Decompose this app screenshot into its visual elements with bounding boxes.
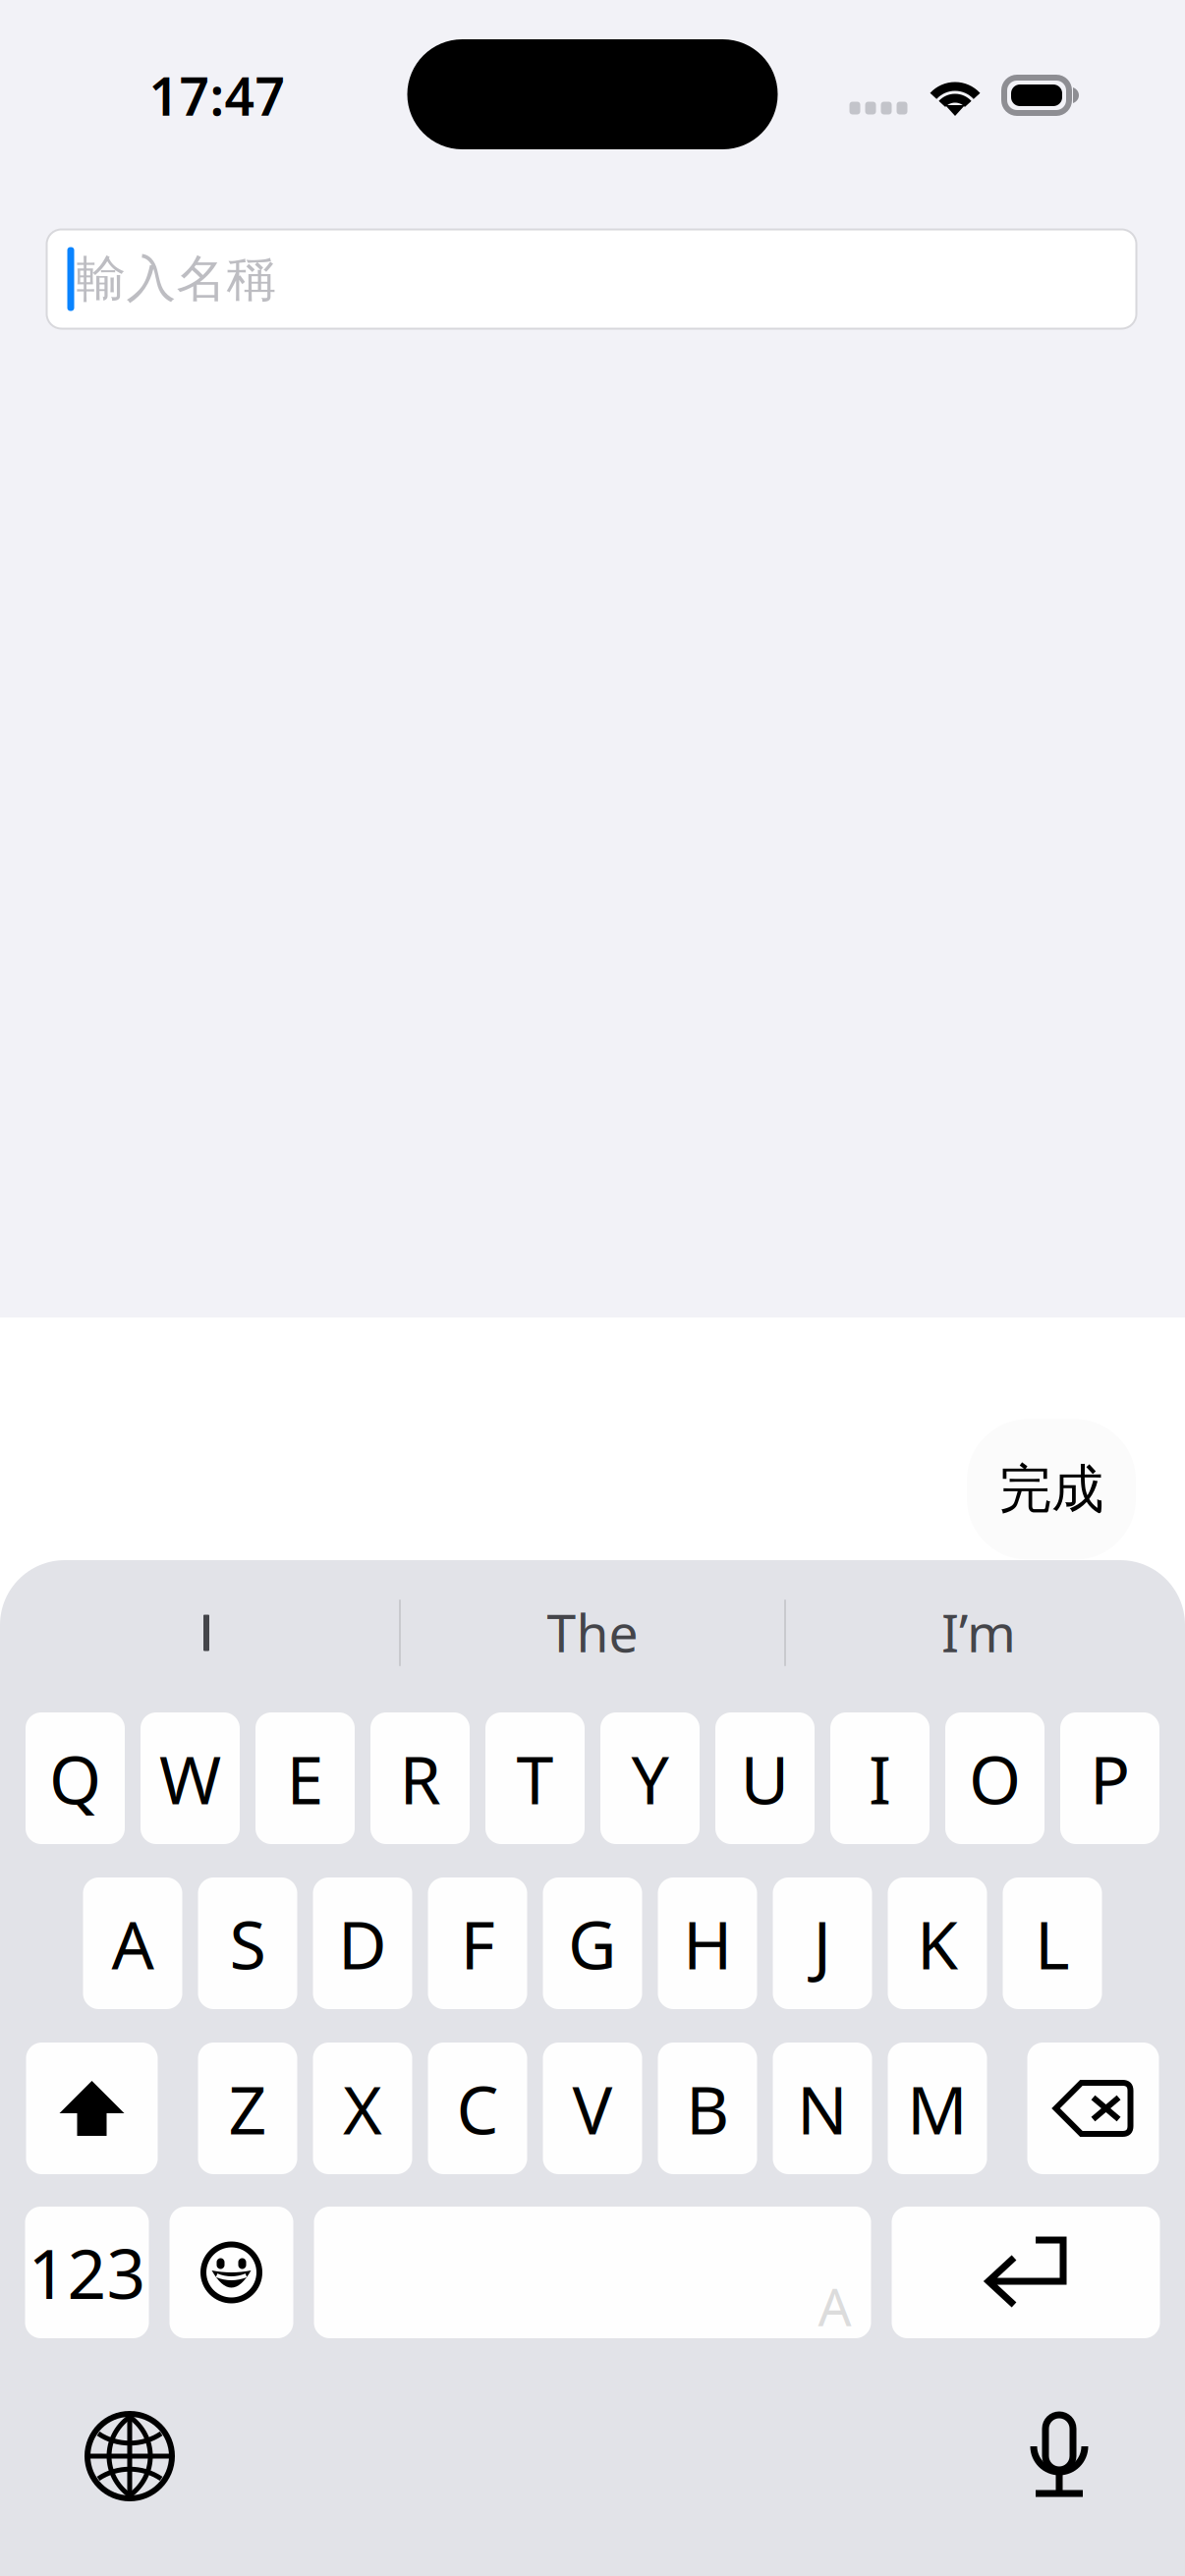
staticText: X — [343, 2064, 382, 2153]
button[interactable]: C — [428, 2043, 527, 2174]
staticText: P — [1090, 1734, 1130, 1823]
button[interactable]: X — [313, 2043, 412, 2174]
staticText: G — [568, 1899, 617, 1988]
staticText: 完成 — [999, 1457, 1103, 1522]
staticText: 輸入名稱 — [76, 248, 277, 310]
staticText: Y — [631, 1734, 669, 1823]
button[interactable]: S — [198, 1877, 297, 2009]
button[interactable]: U — [715, 1712, 815, 1844]
staticText: F — [460, 1899, 495, 1988]
button[interactable]: 完成 — [967, 1419, 1136, 1560]
button[interactable]: 輸入名稱 — [47, 229, 1136, 329]
button[interactable]: Return — [892, 2207, 1160, 2338]
staticText: C — [456, 2064, 499, 2153]
staticText: K — [917, 1899, 958, 1988]
button[interactable]: B — [658, 2043, 757, 2174]
button[interactable]: G — [543, 1877, 642, 2009]
staticText: O — [969, 1734, 1021, 1823]
staticText: Q — [49, 1734, 101, 1823]
button[interactable]: I — [14, 1579, 399, 1687]
staticText: A — [818, 2271, 851, 2341]
staticText: R — [399, 1734, 441, 1823]
button[interactable]: O — [945, 1712, 1044, 1844]
button[interactable]: 123 — [25, 2207, 149, 2338]
button[interactable]: Dictation — [1031, 2415, 1088, 2497]
button[interactable]: Delete — [1027, 2043, 1159, 2174]
button[interactable]: P — [1060, 1712, 1159, 1844]
button[interactable]: H — [658, 1877, 757, 2009]
button[interactable]: Shift — [26, 2043, 158, 2174]
button[interactable]: I’m — [786, 1578, 1171, 1686]
button[interactable]: M — [888, 2043, 987, 2174]
button[interactable]: N — [773, 2043, 872, 2174]
button[interactable]: J — [773, 1877, 872, 2009]
staticText: B — [686, 2064, 729, 2153]
staticText: S — [229, 1899, 266, 1988]
button[interactable]: Emoji — [169, 2207, 293, 2338]
button[interactable]: F — [428, 1877, 527, 2009]
button[interactable]: Q — [26, 1712, 125, 1844]
button[interactable]: T — [485, 1712, 585, 1844]
staticText: T — [516, 1734, 554, 1823]
staticText: V — [572, 2064, 613, 2153]
staticText: I — [869, 1734, 891, 1823]
staticText: H — [683, 1899, 732, 1988]
button[interactable]: Y — [600, 1712, 700, 1844]
staticText: W — [159, 1734, 221, 1823]
staticText: The — [547, 1597, 638, 1667]
button[interactable]: R — [370, 1712, 470, 1844]
staticText: I’m — [941, 1597, 1016, 1667]
staticText: N — [797, 2064, 848, 2153]
button[interactable]: The — [400, 1578, 785, 1686]
button[interactable]: W — [141, 1712, 240, 1844]
staticText: 123 — [28, 2227, 146, 2318]
staticText: J — [813, 1899, 832, 1988]
button[interactable]: Z — [198, 2043, 297, 2174]
staticText: L — [1035, 1899, 1070, 1988]
staticText: A — [112, 1899, 154, 1988]
button[interactable]: I — [830, 1712, 930, 1844]
staticText: U — [740, 1734, 790, 1823]
button[interactable]: Change keyboard — [87, 2414, 172, 2498]
button[interactable]: K — [888, 1877, 987, 2009]
staticText: E — [286, 1734, 324, 1823]
staticText: D — [338, 1899, 387, 1988]
button[interactable]: D — [313, 1877, 412, 2009]
button[interactable]: L — [1003, 1877, 1102, 2009]
button[interactable]: V — [543, 2043, 642, 2174]
button[interactable]: A — [83, 1877, 182, 2009]
staticText: 17:47 — [149, 61, 285, 130]
staticText: Z — [228, 2064, 267, 2153]
button[interactable]: E — [255, 1712, 355, 1844]
staticText: M — [907, 2064, 968, 2153]
